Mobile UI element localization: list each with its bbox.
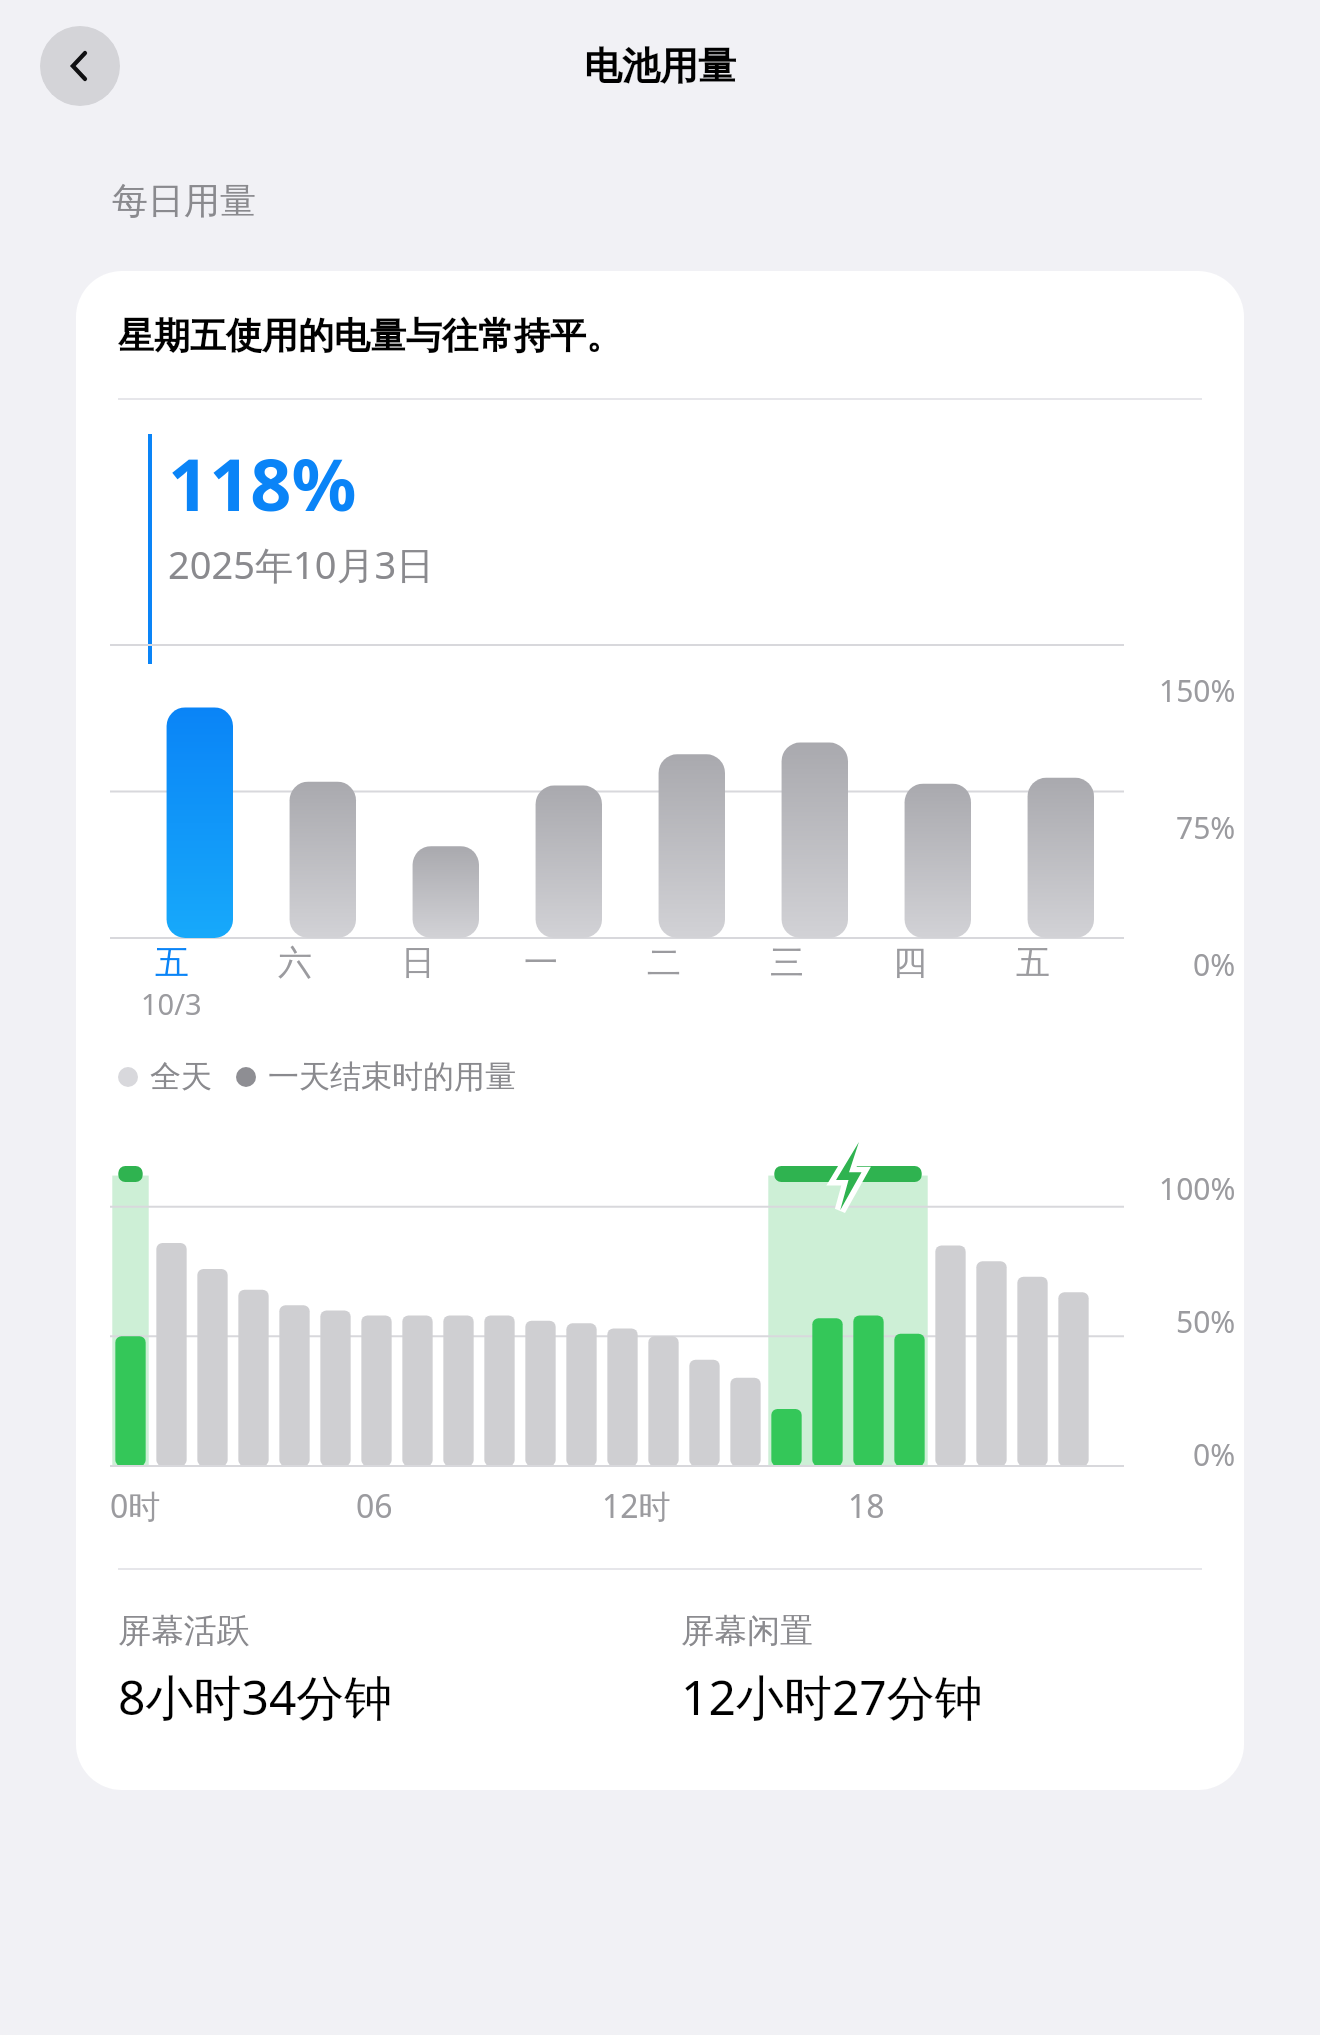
staticText: 2025年10月3日 bbox=[168, 538, 435, 590]
staticText: 0% bbox=[1193, 944, 1236, 984]
staticText: 日 bbox=[401, 941, 435, 984]
staticText: 8小时34分钟 bbox=[118, 1664, 393, 1730]
staticText: 118% bbox=[168, 434, 357, 532]
staticText: 二 bbox=[647, 941, 681, 984]
staticText: 12小时27分钟 bbox=[681, 1664, 983, 1730]
staticText: 18 bbox=[848, 1484, 885, 1528]
staticText: 一 bbox=[524, 941, 558, 984]
staticText: 屏幕闲置 bbox=[681, 1610, 813, 1652]
staticText: 屏幕活跃 bbox=[118, 1610, 250, 1652]
staticText: 全天 bbox=[150, 1057, 212, 1096]
staticText: 五 bbox=[155, 941, 189, 984]
staticText: 75% bbox=[1176, 807, 1236, 848]
staticText: 0% bbox=[1193, 1434, 1236, 1475]
staticText: 每日用量 bbox=[112, 178, 256, 223]
staticText: 一天结束时的用量 bbox=[268, 1057, 516, 1096]
staticText: 电池用量 bbox=[584, 42, 736, 90]
staticText: 10/3 bbox=[141, 984, 202, 1023]
staticText: 五 bbox=[1016, 941, 1050, 984]
staticText: 150% bbox=[1159, 670, 1236, 711]
staticText: 12时 bbox=[602, 1484, 671, 1528]
staticText: 100% bbox=[1159, 1168, 1236, 1209]
staticText: 06 bbox=[356, 1484, 393, 1528]
staticText: 三 bbox=[770, 941, 804, 984]
staticText: 六 bbox=[278, 941, 312, 984]
staticText: 0时 bbox=[110, 1484, 161, 1528]
staticText: 50% bbox=[1176, 1301, 1236, 1342]
button[interactable]: 返回 bbox=[40, 26, 120, 106]
staticText: 四 bbox=[893, 941, 927, 984]
staticText: 星期五使用的电量与往常持平。 bbox=[118, 313, 622, 358]
